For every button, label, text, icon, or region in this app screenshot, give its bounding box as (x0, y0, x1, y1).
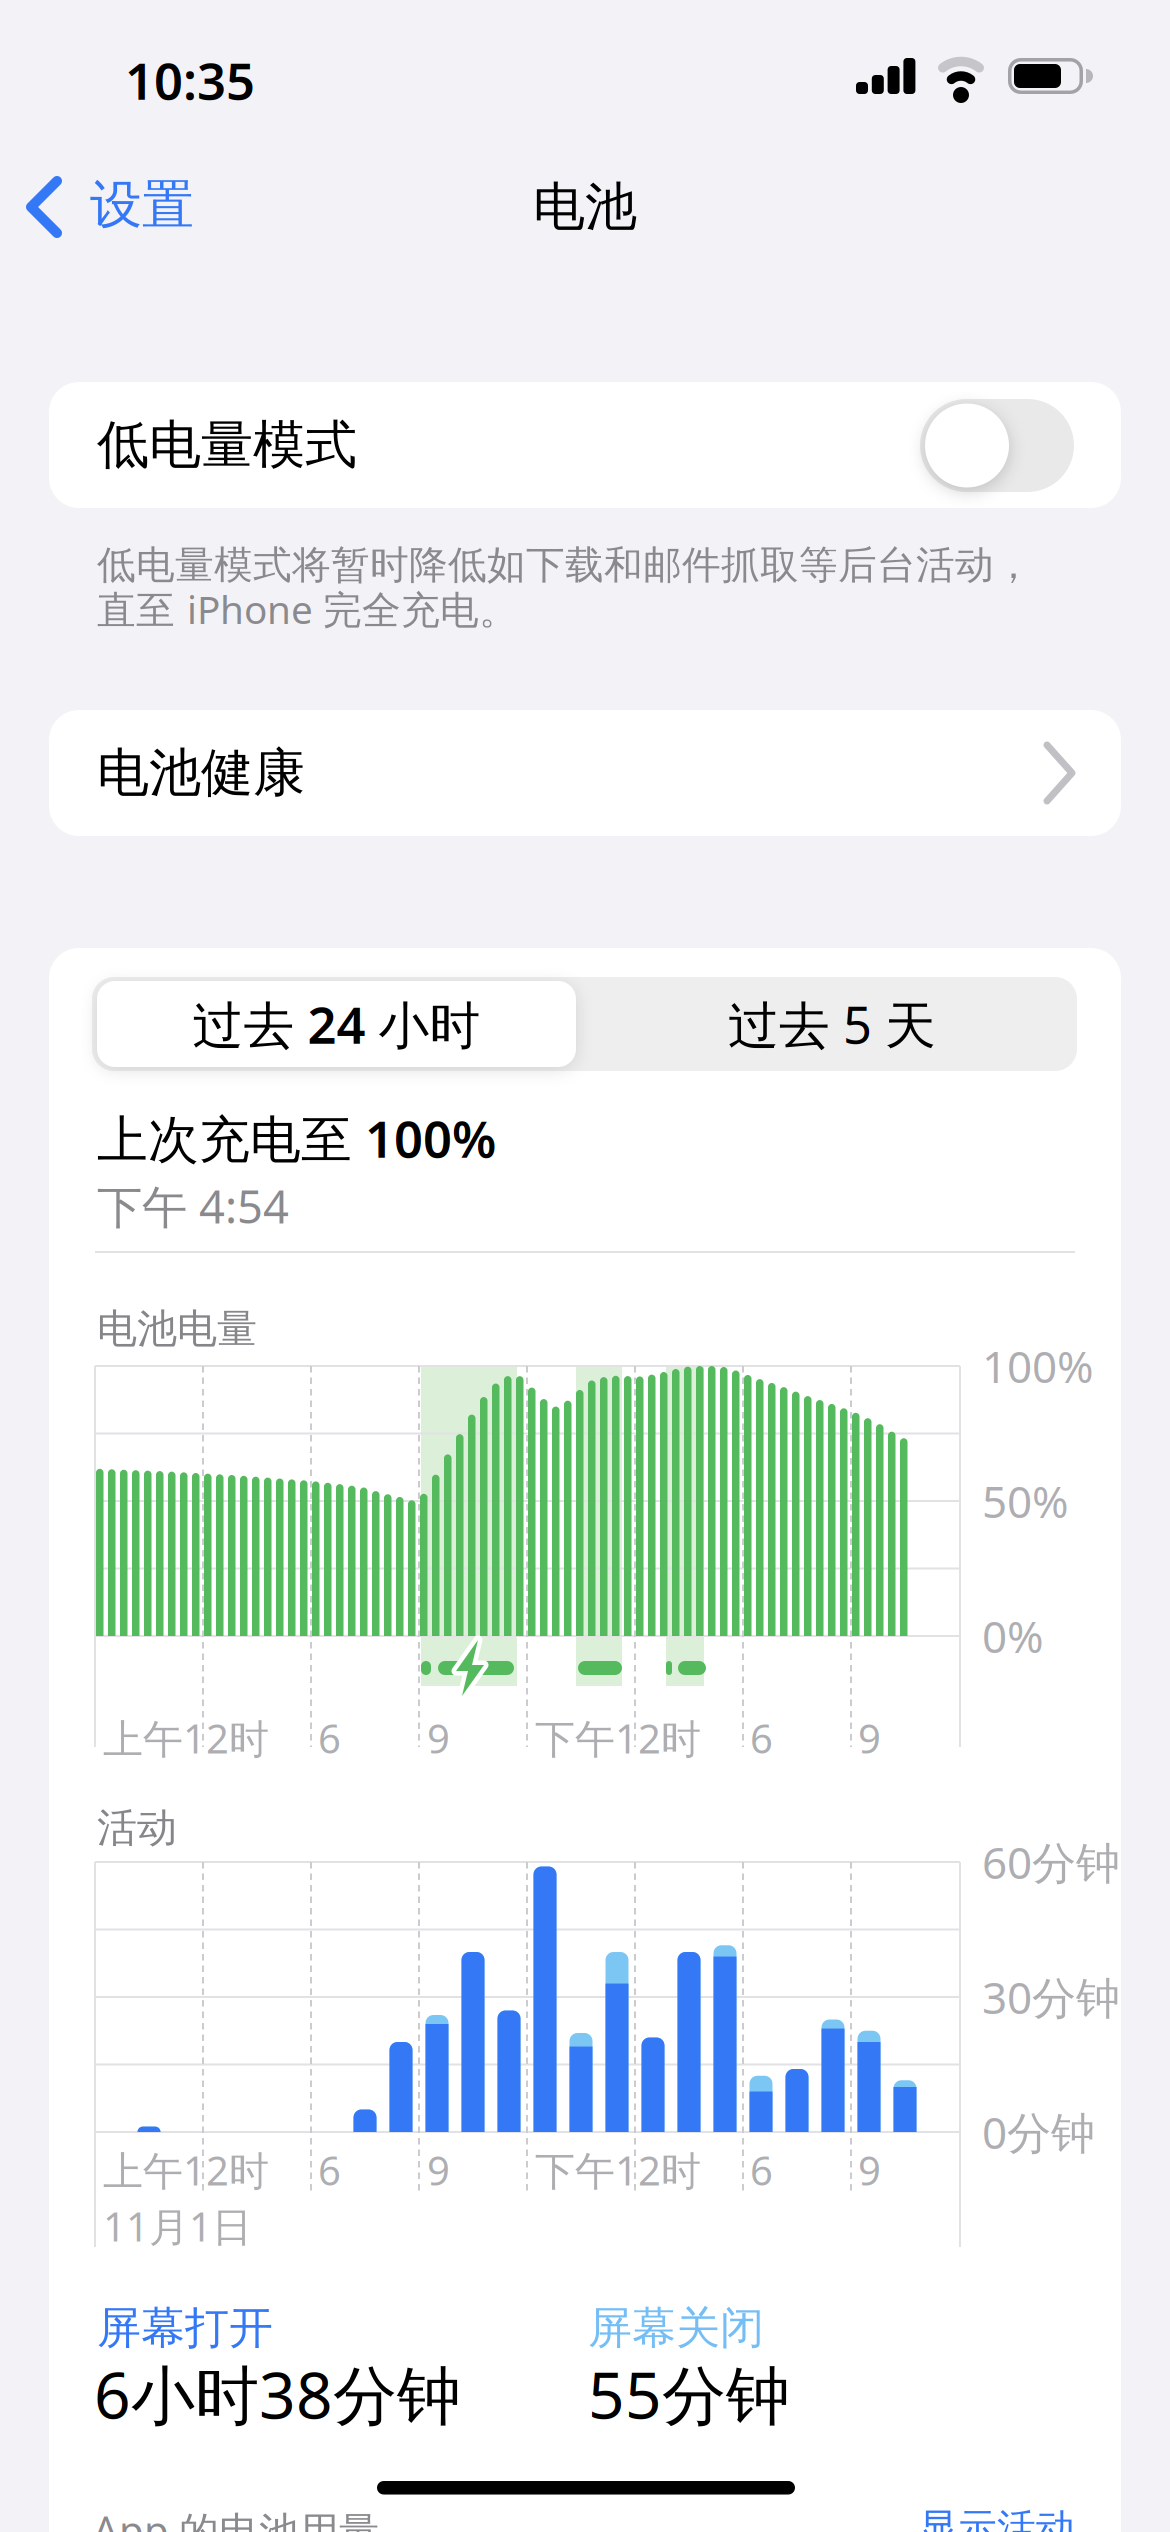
staticText: 直至 iPhone 完全充电。 (97, 583, 518, 635)
staticText: 下午 4:54 (97, 1176, 289, 1236)
staticText: 下午12时 (535, 2143, 701, 2196)
button[interactable]: 设置 (28, 162, 258, 252)
staticText: 9 (858, 2143, 881, 2196)
staticText: 0分钟 (982, 2103, 1095, 2161)
staticText: 9 (858, 1711, 881, 1764)
staticText: 下午12时 (535, 1711, 701, 1764)
staticText: 屏幕关闭 (588, 2301, 764, 2355)
staticText: 屏幕打开 (97, 2301, 273, 2355)
staticText: 100% (982, 1337, 1094, 1395)
staticText: 11月1日 (103, 2199, 252, 2252)
staticText: 上午12时 (103, 1711, 269, 1764)
staticText: App 的电池用量 (93, 2503, 379, 2532)
staticText: 50% (982, 1472, 1069, 1530)
button[interactable] (920, 399, 1074, 492)
staticText: 电池健康 (97, 741, 305, 805)
staticText: 过去 24 小时 (192, 990, 480, 1058)
staticText: 55分钟 (588, 2351, 790, 2436)
staticText: 6 (750, 2143, 773, 2196)
staticText: 6 (318, 2143, 341, 2196)
button[interactable]: 过去 24 小时 (97, 981, 576, 1067)
staticText: 低电量模式 (97, 413, 357, 477)
staticText: 显示活动 (919, 2504, 1075, 2532)
staticText: 活动 (97, 1803, 177, 1852)
staticText: 电池 (533, 175, 637, 239)
staticText: 60分钟 (982, 1833, 1120, 1891)
staticText: 30分钟 (982, 1968, 1120, 2026)
staticText: 9 (427, 2143, 450, 2196)
staticText: 6小时38分钟 (94, 2351, 461, 2436)
button[interactable]: 过去 5 天 (592, 981, 1072, 1067)
staticText: 9 (427, 1711, 450, 1764)
staticText: 电池电量 (97, 1304, 257, 1353)
staticText: 上次充电至 100% (97, 1104, 496, 1172)
staticText: 低电量模式将暂时降低如下载和邮件抓取等后台活动， (97, 541, 1033, 589)
staticText: 设置 (90, 173, 194, 237)
staticText: 上午12时 (103, 2143, 269, 2196)
button[interactable]: 电池健康 (49, 710, 1121, 836)
staticText: 10:35 (125, 46, 255, 114)
staticText: 6 (750, 1711, 773, 1764)
staticText: 0% (982, 1607, 1044, 1665)
staticText: 过去 5 天 (728, 990, 936, 1058)
staticText: 6 (318, 1711, 341, 1764)
